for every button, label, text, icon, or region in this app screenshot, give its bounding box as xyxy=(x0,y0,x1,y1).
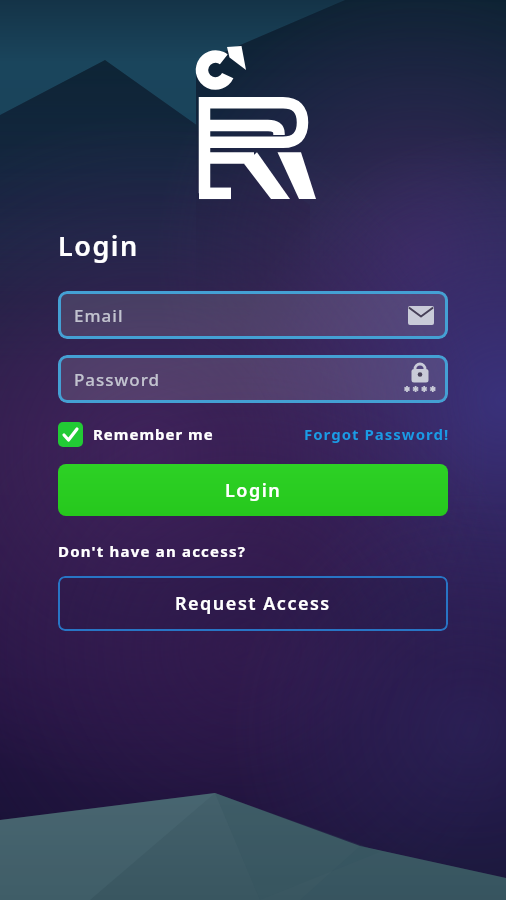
button[interactable]: Forgot Password! xyxy=(280,419,450,449)
button[interactable]: Password xyxy=(58,355,448,403)
button[interactable]: Remember me xyxy=(58,421,214,447)
staticText: Don't have an access? xyxy=(58,541,246,561)
staticText: Password xyxy=(74,368,161,391)
button[interactable]: Email xyxy=(58,291,448,339)
button[interactable]: Login xyxy=(58,464,448,516)
button[interactable]: Request Access xyxy=(58,576,448,631)
staticText: Email xyxy=(74,304,124,327)
staticText: Login xyxy=(225,478,282,503)
staticText: Request Access xyxy=(175,591,331,616)
staticText: Remember me xyxy=(93,424,214,444)
staticText: Forgot Password! xyxy=(304,424,450,444)
staticText: Login xyxy=(58,227,139,264)
